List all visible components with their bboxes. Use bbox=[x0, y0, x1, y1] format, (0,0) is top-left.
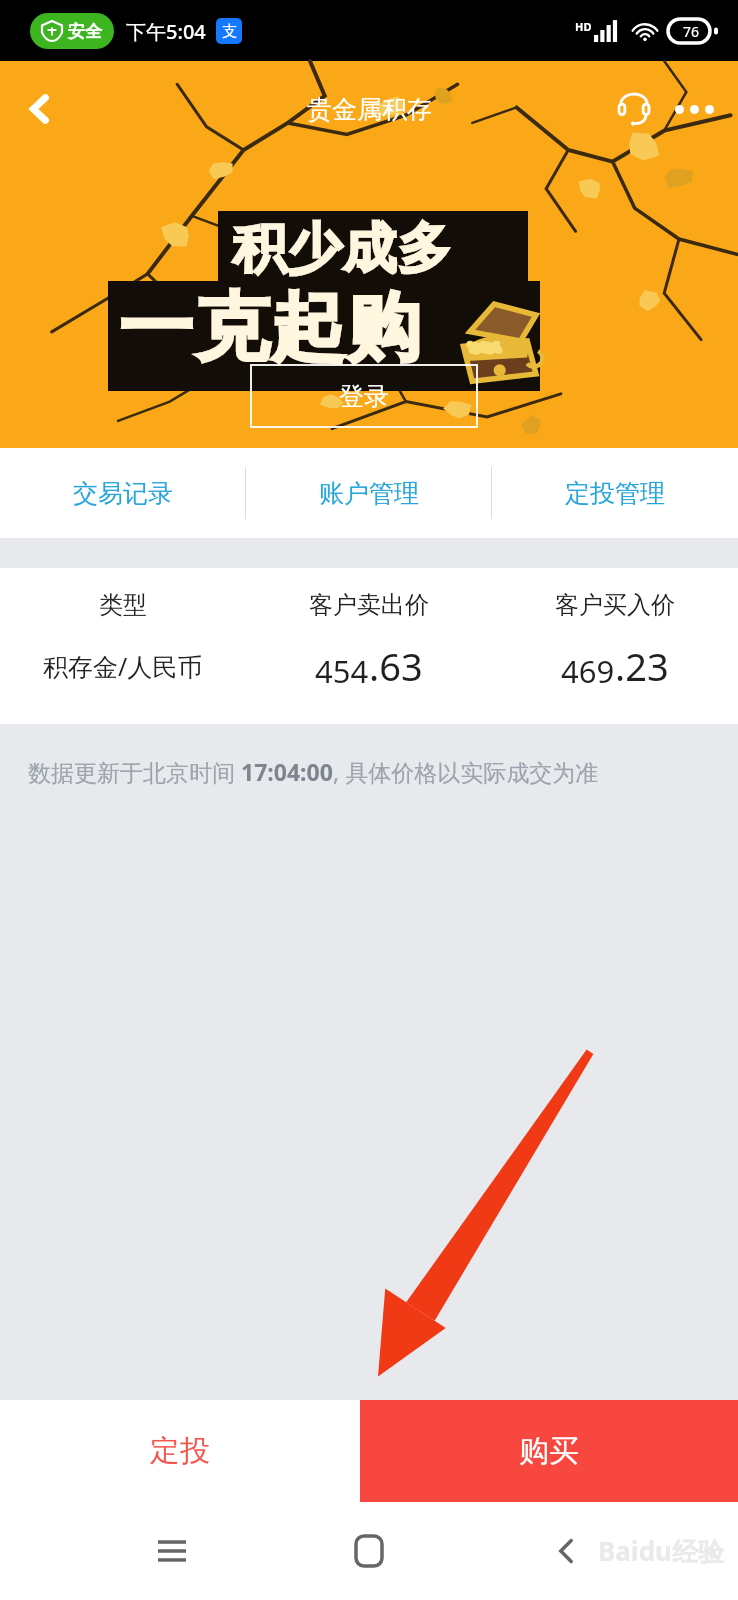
staticText: 下午5:04 bbox=[126, 18, 206, 45]
staticText: 469 bbox=[561, 650, 615, 692]
staticText: 客户卖出价 bbox=[309, 590, 429, 620]
staticText: 账户管理 bbox=[319, 478, 419, 509]
staticText: 购买 bbox=[519, 1432, 579, 1470]
staticText: .63 bbox=[369, 640, 423, 692]
button[interactable]: Home bbox=[337, 1519, 401, 1583]
staticText: 一克起购 bbox=[118, 282, 422, 375]
staticText: 定投 bbox=[150, 1432, 210, 1470]
staticText: 定投管理 bbox=[565, 478, 665, 509]
staticText: 贵金属积存 bbox=[307, 94, 432, 125]
button[interactable]: 定投 bbox=[0, 1400, 360, 1502]
button[interactable]: More options bbox=[668, 83, 720, 135]
staticText: 安全 bbox=[68, 21, 102, 42]
button[interactable]: Back bbox=[534, 1519, 598, 1583]
staticText: .23 bbox=[615, 640, 669, 692]
staticText: 积存金/人民币 bbox=[43, 649, 203, 683]
staticText: 454 bbox=[315, 650, 369, 692]
staticText: 数据更新于北京时间 bbox=[28, 756, 241, 787]
staticText: , 具体价格以实际成交为准 bbox=[333, 756, 599, 787]
button[interactable]: Customer service bbox=[608, 83, 660, 135]
staticText: 客户买入价 bbox=[555, 590, 675, 620]
staticText: 支 bbox=[222, 22, 237, 41]
button[interactable]: 账户管理 bbox=[246, 448, 492, 538]
staticText: 类型 bbox=[99, 590, 147, 620]
button[interactable]: 登录 bbox=[250, 364, 478, 428]
staticText: HD bbox=[575, 19, 592, 34]
button[interactable]: Recent apps bbox=[140, 1519, 204, 1583]
staticText: 交易记录 bbox=[73, 478, 173, 509]
staticText: Baidu经验 bbox=[598, 1533, 724, 1569]
staticText: 登录 bbox=[339, 381, 389, 412]
button[interactable]: 购买 bbox=[360, 1400, 738, 1502]
button[interactable]: 交易记录 bbox=[0, 448, 246, 538]
staticText: 积少成多 bbox=[232, 215, 452, 283]
button[interactable]: Back bbox=[12, 81, 68, 137]
staticText: 76 bbox=[683, 22, 700, 41]
button[interactable]: 定投管理 bbox=[492, 448, 738, 538]
staticText: 17:04:00 bbox=[241, 756, 333, 787]
